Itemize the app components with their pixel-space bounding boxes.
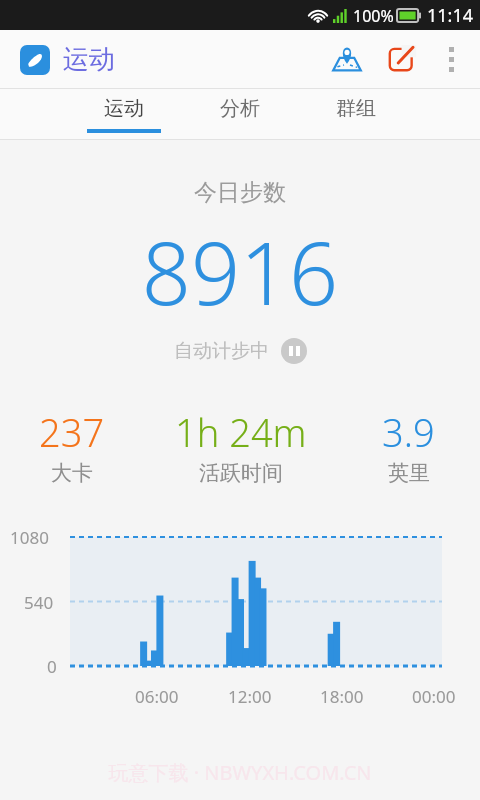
button[interactable]: 3.9 <box>337 406 480 486</box>
button[interactable]: More options <box>428 36 474 82</box>
staticText: 活跃时间 <box>199 460 283 486</box>
staticText: 运动 <box>104 96 144 121</box>
staticText: 18:00 <box>320 685 364 708</box>
staticText: 1h 24m <box>175 406 307 458</box>
button[interactable]: Edit <box>374 32 428 86</box>
button[interactable]: Pause <box>281 338 307 364</box>
staticText: 11:14 <box>427 3 474 28</box>
staticText: 237 <box>39 406 105 458</box>
button[interactable]: 运动 <box>77 96 171 133</box>
staticText: 3.9 <box>382 406 435 458</box>
staticText: 大卡 <box>51 460 93 486</box>
button[interactable]: 1h 24m <box>144 406 337 486</box>
staticText: 06:00 <box>135 685 179 708</box>
button[interactable]: Map <box>320 32 374 86</box>
staticText: 00:00 <box>412 685 456 708</box>
staticText: 540 <box>24 591 54 614</box>
staticText: 分析 <box>220 96 260 121</box>
staticText: 玩意下载 · NBWYXH.COM.CN <box>0 759 480 786</box>
staticText: 运动 <box>63 43 115 76</box>
staticText: 今日步数 <box>0 178 480 207</box>
staticText: 12:00 <box>228 685 272 708</box>
button[interactable]: 分析 <box>193 96 287 133</box>
staticText: 群组 <box>336 96 376 121</box>
staticText: 1080 <box>10 526 49 549</box>
staticText: 自动计步中 <box>174 339 269 363</box>
staticText: 英里 <box>388 460 430 486</box>
staticText: 100% <box>353 5 394 27</box>
button[interactable]: 群组 <box>309 96 403 133</box>
staticText: 0 <box>47 655 57 678</box>
button[interactable]: 运动 <box>0 43 123 76</box>
button[interactable]: 237 <box>0 406 144 486</box>
staticText: 8916 <box>0 213 480 330</box>
